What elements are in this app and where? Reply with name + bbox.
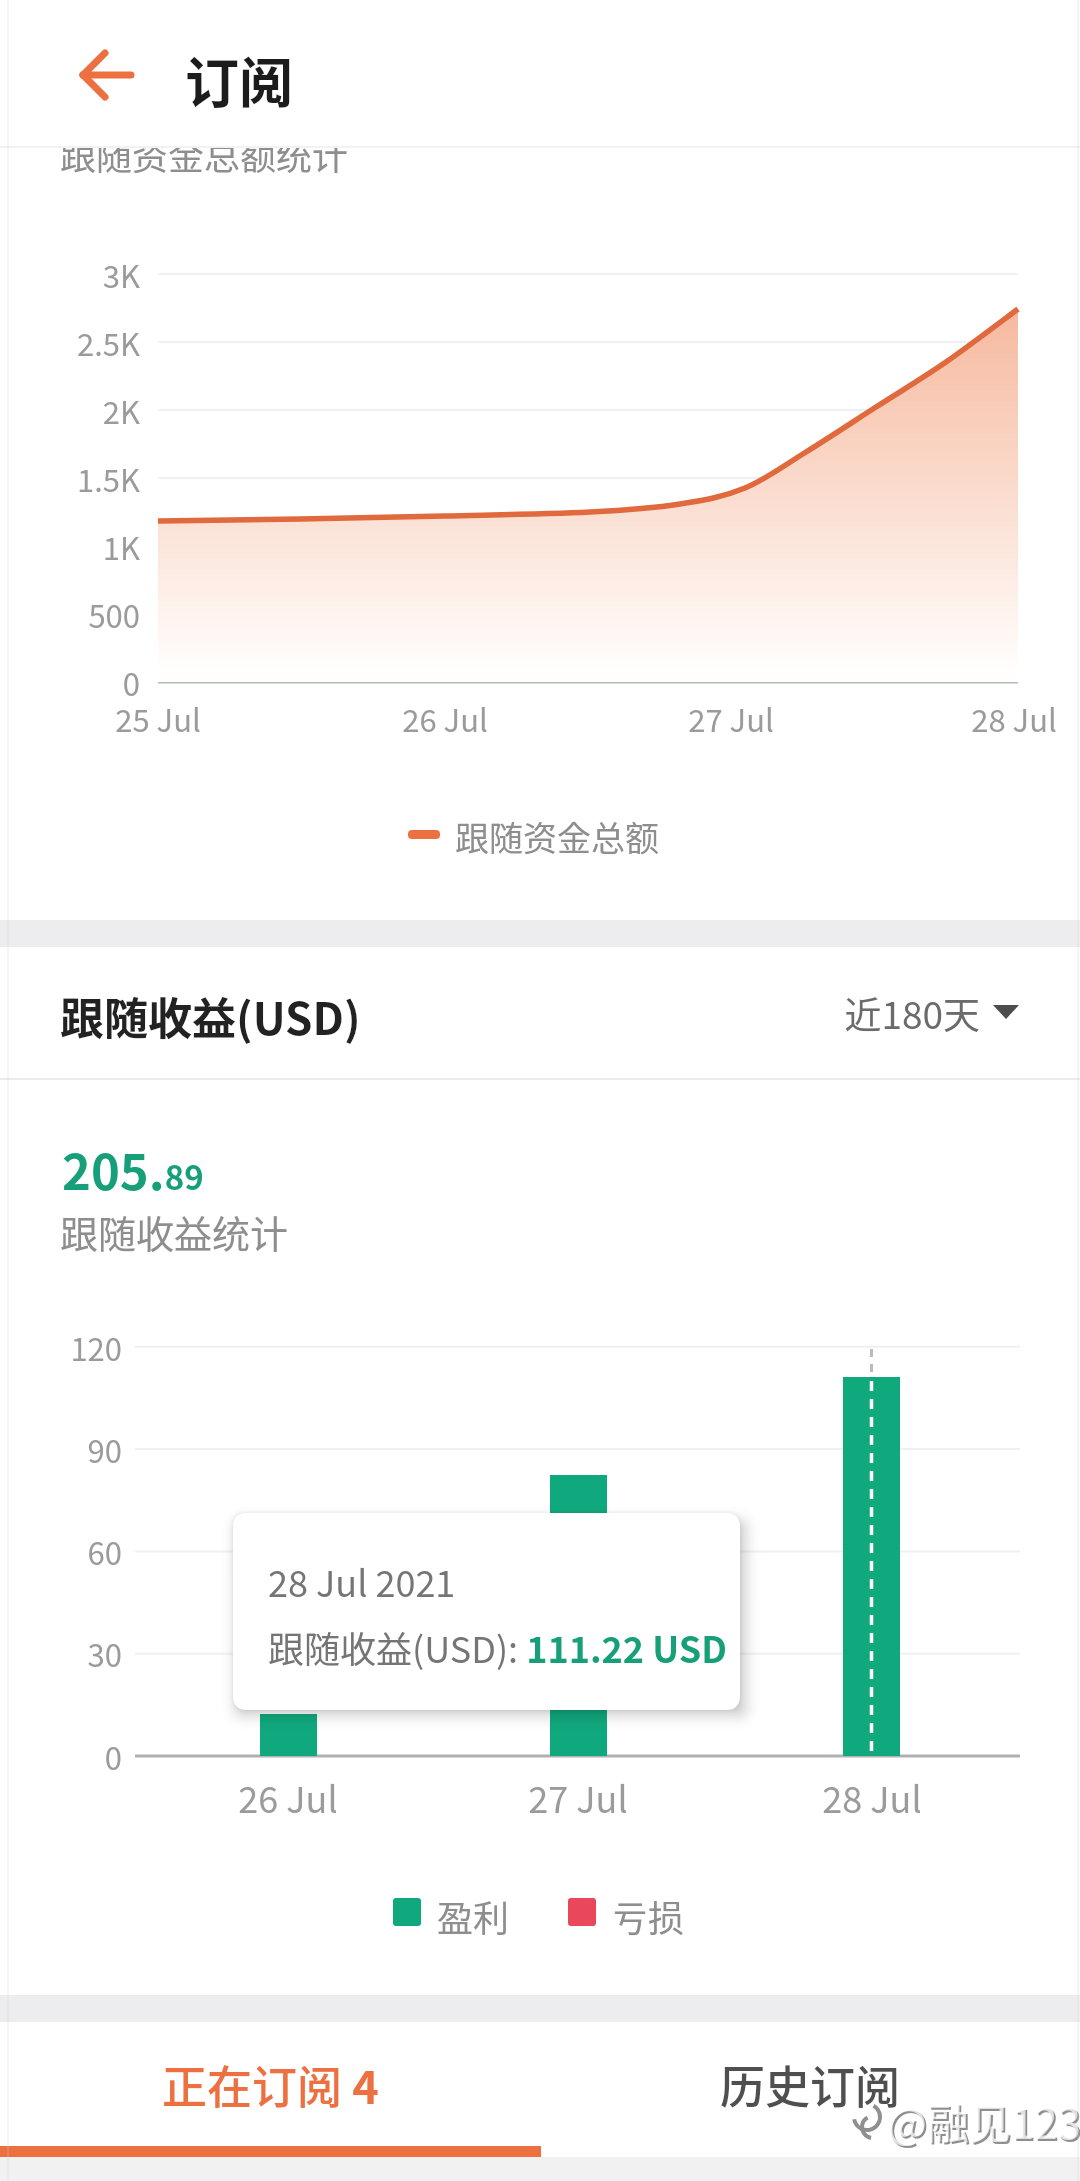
- staticText: 0: [0, 1734, 122, 1779]
- staticText: @融见123: [889, 2092, 1080, 2153]
- staticText: 正在订阅 4: [162, 2052, 379, 2117]
- staticText: 25 Jul: [98, 696, 218, 741]
- staticText: 跟随收益(USD): 111.22 USD: [268, 1621, 727, 1673]
- staticText: 500: [20, 592, 140, 637]
- staticText: 跟随资金总额统计: [60, 128, 349, 180]
- staticText: 30: [0, 1631, 122, 1676]
- staticText: 28 Jul: [954, 696, 1074, 741]
- staticText: 跟随收益统计: [60, 1204, 289, 1259]
- staticText: 28 Jul: [812, 1771, 932, 1823]
- staticText: 90: [0, 1427, 122, 1472]
- staticText: @融见123: [887, 2090, 1080, 2151]
- staticText: 26 Jul: [228, 1771, 348, 1823]
- staticText: 1.5K: [20, 456, 140, 501]
- staticText: 2.5K: [20, 320, 140, 365]
- staticText: 28 Jul 2021: [268, 1555, 456, 1607]
- staticText: 26 Jul: [385, 696, 505, 741]
- staticText: 盈利: [437, 1890, 510, 1942]
- staticText: 订阅: [185, 40, 293, 118]
- staticText: 1K: [20, 524, 140, 569]
- staticText: 27 Jul: [518, 1771, 638, 1823]
- button[interactable]: [60, 40, 150, 110]
- staticText: 近180天: [820, 986, 980, 1036]
- staticText: 3K: [20, 252, 140, 297]
- staticText: 历史订阅: [720, 2052, 901, 2117]
- staticText: 2K: [20, 388, 140, 433]
- staticText: 跟随资金总额: [455, 812, 659, 861]
- staticText: 205.89: [62, 1133, 204, 1204]
- button[interactable]: 历史订阅: [540, 2022, 1080, 2146]
- staticText: 60: [0, 1529, 122, 1574]
- staticText: 跟随收益(USD): [60, 984, 361, 1048]
- button[interactable]: 正在订阅 4: [0, 2022, 540, 2146]
- button[interactable]: 近180天: [820, 986, 1025, 1036]
- staticText: 27 Jul: [671, 696, 791, 741]
- staticText: 120: [0, 1325, 122, 1370]
- staticText: 亏损: [612, 1890, 685, 1942]
- staticText: 0: [20, 660, 140, 705]
